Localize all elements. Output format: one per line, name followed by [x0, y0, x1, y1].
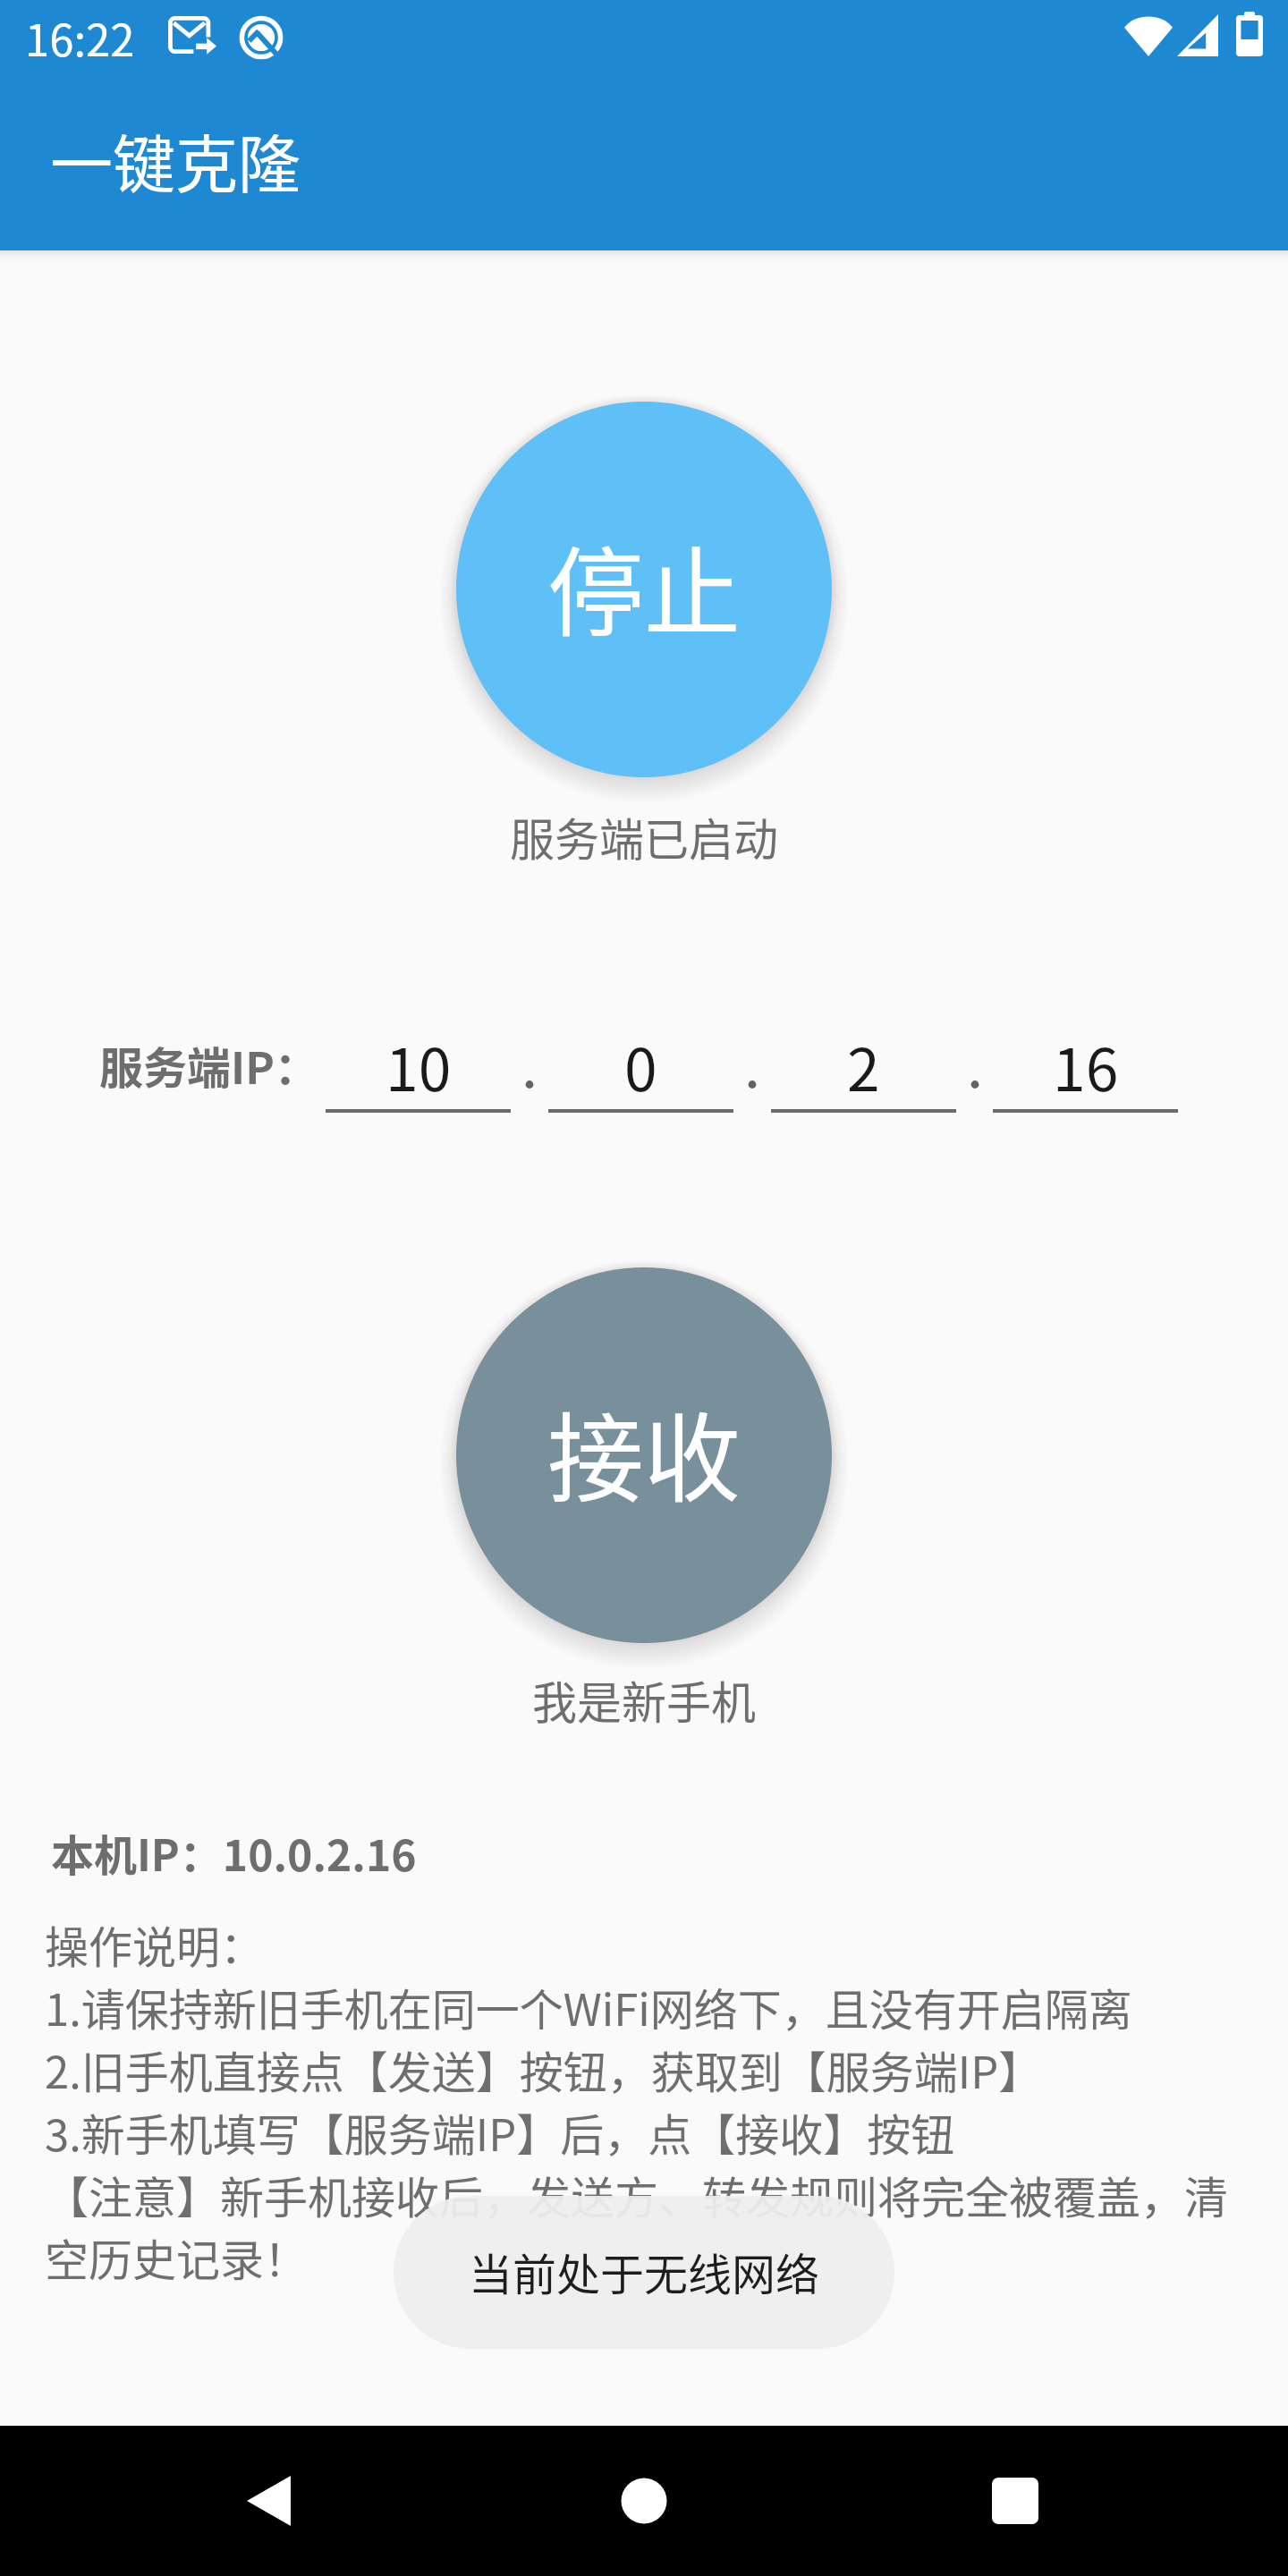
button[interactable]: 10 — [326, 1022, 511, 1105]
button[interactable]: Recent apps — [972, 2458, 1058, 2544]
staticText: 我是新手机 — [0, 1667, 1288, 1732]
other: Quiet mode — [240, 16, 283, 59]
button[interactable]: 当前处于无线网络 — [394, 2196, 894, 2349]
staticText: 16:22 — [25, 5, 135, 69]
button[interactable]: Home — [601, 2458, 687, 2544]
other: Unread mail — [168, 16, 216, 54]
button[interactable]: Back — [225, 2458, 311, 2544]
staticText: 服务端已启动 — [0, 804, 1288, 869]
staticText: 一键克隆 — [50, 115, 301, 206]
staticText: 0 — [624, 1022, 657, 1105]
button[interactable]: 2 — [771, 1022, 956, 1105]
button[interactable]: 接收 — [456, 1267, 832, 1643]
staticText: 10 — [386, 1022, 452, 1105]
staticText: 停止 — [547, 516, 741, 656]
staticText: 16 — [1053, 1022, 1119, 1105]
staticText: 当前处于无线网络 — [469, 2240, 820, 2303]
button[interactable]: 0 — [548, 1022, 733, 1105]
staticText: 操作说明： 1.请保持新旧手机在同一个WiFi网络下，且没有开启隔离 2.旧手机… — [45, 1912, 1248, 2289]
staticText: 2 — [847, 1022, 880, 1105]
button[interactable]: 16 — [993, 1022, 1178, 1105]
button[interactable]: 停止 — [456, 402, 832, 777]
staticText: 服务端IP： — [99, 1033, 318, 1097]
staticText: 接收 — [547, 1382, 741, 1521]
staticText: 本机IP：10.0.2.16 — [51, 1821, 417, 1884]
